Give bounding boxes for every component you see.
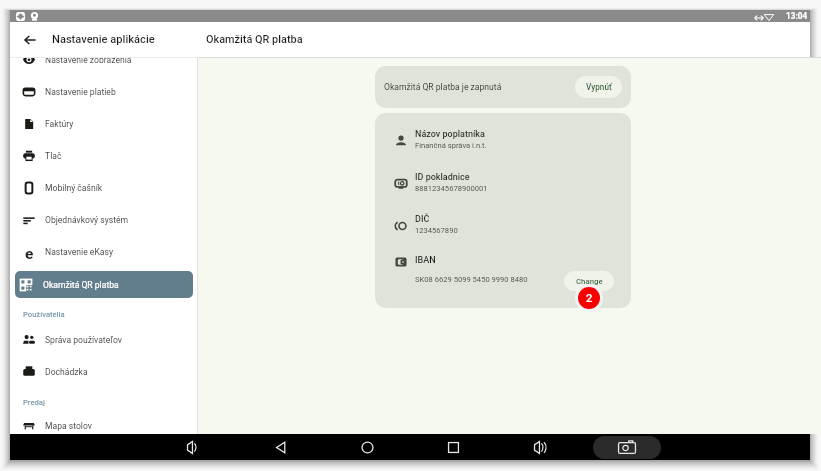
staticText: Finančná správa i.n.t. [415,141,487,150]
button[interactable]: Dochádzka [10,356,197,388]
staticText: IBAN [415,255,436,266]
staticText: Tlač [45,151,62,161]
button[interactable]: Home [354,434,380,460]
button[interactable]: Volume up [527,434,553,460]
button[interactable]: Faktúry [10,108,197,140]
staticText: 1234567890 [415,226,458,235]
staticText: Nastavenie eKasy [45,247,113,257]
button[interactable]: Okamžitá QR platba [15,271,193,298]
staticText: Mapa stolov [45,421,92,431]
button[interactable]: e [10,236,197,268]
button[interactable]: Back [19,29,41,51]
staticText: Nastavenie platieb [45,87,116,97]
button[interactable]: Recent apps [440,434,466,460]
staticText: Change [576,277,603,286]
staticText: Predaj [23,398,45,407]
staticText: Okamžitá QR platba [206,33,303,46]
staticText: Nastavenie zobrazenia [45,57,132,65]
button[interactable]: Objednávkový systém [10,204,197,236]
button[interactable]: Mapa stolov [10,410,197,434]
button[interactable]: Screenshot [593,436,661,459]
button[interactable]: Change [564,271,614,291]
button[interactable]: Volume down [180,434,206,460]
staticText: Názov poplatníka [415,129,485,140]
staticText: Faktúry [45,119,74,129]
staticText: Okamžitá QR platba je zapnutá [384,82,502,92]
staticText: ID pokladnice [415,172,470,183]
staticText: e [25,245,34,259]
button[interactable]: Mobilný čašník [10,172,197,204]
button[interactable]: Správa používateľov [10,324,197,356]
staticText: Okamžitá QR platba [43,280,119,290]
button[interactable]: Nastavenie zobrazenia [10,57,197,76]
staticText: 88812345678900001 [415,184,488,193]
staticText: SK08 6629 5099 5450 9990 8480 [415,275,528,284]
staticText: 13:04 [786,11,808,21]
staticText: Používatelia [23,310,65,319]
staticText: Správa používateľov [45,335,122,345]
staticText: Objednávkový systém [45,215,129,225]
staticText: Vypnúť [586,82,612,92]
button[interactable]: Vypnúť [575,76,622,98]
staticText: DIČ [415,214,430,225]
staticText: Dochádzka [45,367,88,377]
staticText: 2 [586,292,593,305]
button[interactable]: Back [267,434,293,460]
button[interactable]: Nastavenie platieb [10,76,197,108]
staticText: Mobilný čašník [45,183,103,193]
staticText: Nastavenie aplikácie [52,33,155,46]
button[interactable]: Tlač [10,140,197,172]
